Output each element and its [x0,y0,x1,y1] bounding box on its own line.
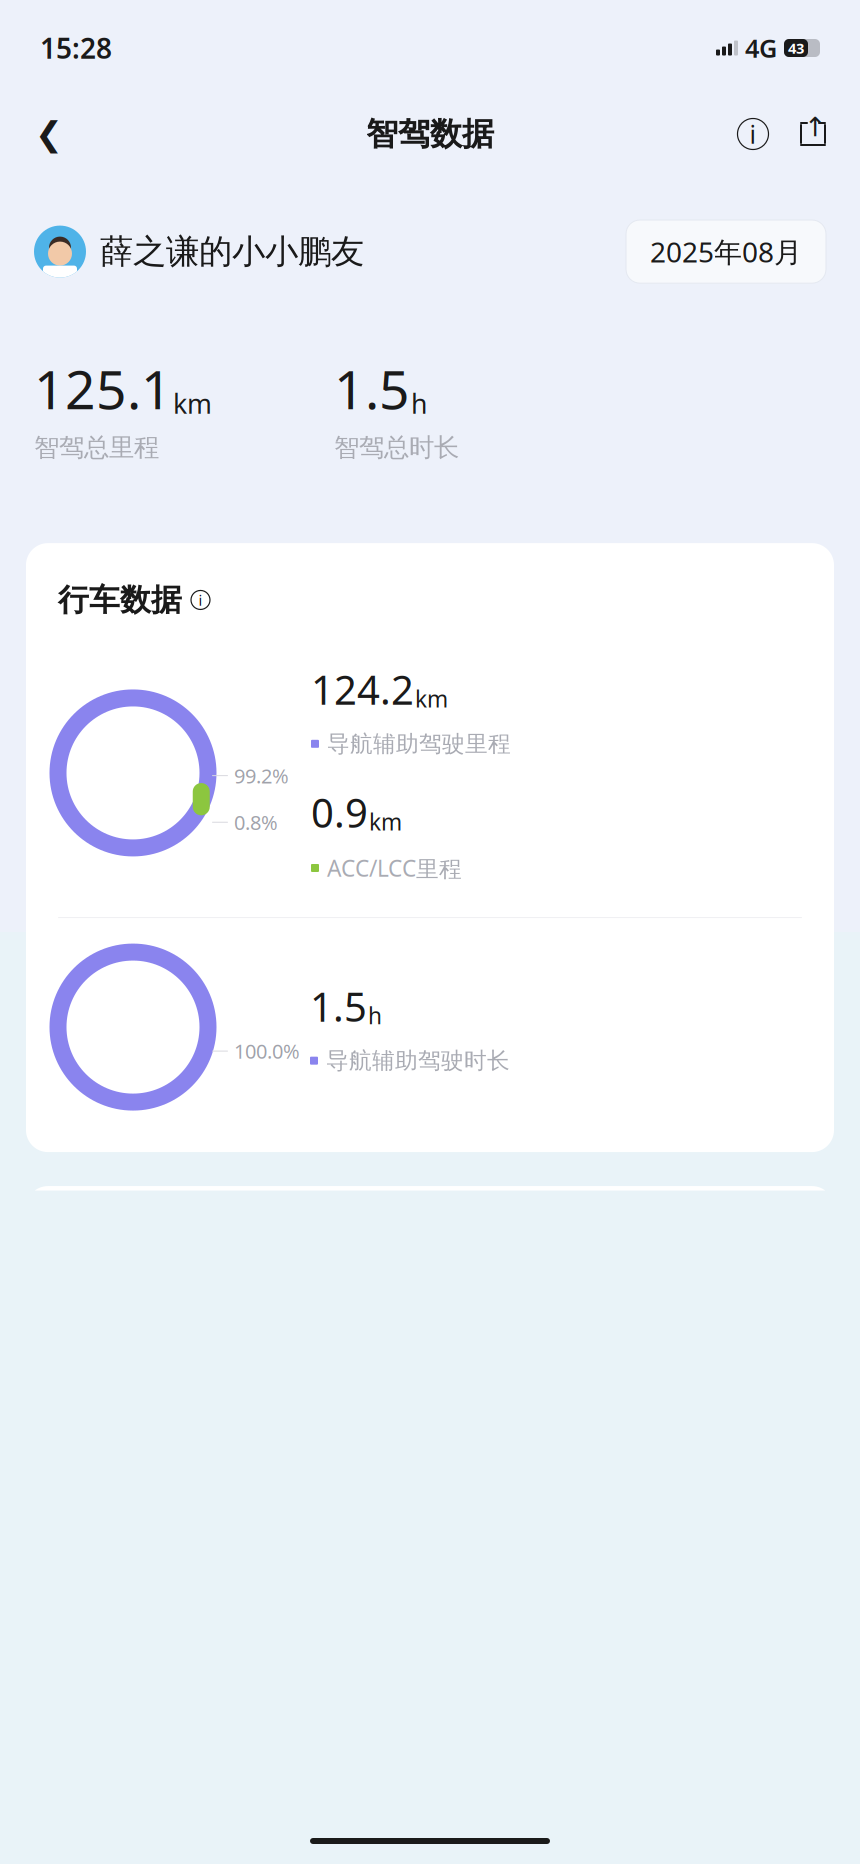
staticText: 导航辅助驾驶时长 [326,1047,510,1074]
staticText: 43 [788,38,804,58]
staticText: 智驾数据 [366,114,494,154]
staticText: 导航辅助驾驶里程 [327,730,511,758]
staticText: i [749,117,756,151]
button[interactable]: 返回 [26,111,72,157]
staticText: 15:28 [40,29,112,67]
staticText: 125.1 [34,353,172,424]
staticText: 行车数据 [58,581,182,619]
staticText: i [198,590,202,610]
staticText: ↑ [804,112,826,142]
staticText: 2025年08月 [650,233,802,270]
staticText: ACC/LCC里程 [327,853,462,883]
staticText: 99.2% [234,762,289,789]
staticText: h [368,1000,382,1031]
staticText: 0.8% [234,809,278,835]
staticText: 1.5 [310,980,367,1033]
staticText: h [411,386,427,421]
staticText: ❮ [35,115,63,153]
staticText: 124.2 [311,663,414,716]
staticText: km [369,807,402,837]
staticText: 0.9 [311,786,368,839]
button[interactable]: 关于行车数据 [191,590,210,609]
staticText: 薛之谦的小小鹏友 [100,231,364,272]
staticText: km [415,684,448,714]
button[interactable]: 说明 [732,113,774,155]
staticText: 智驾总时长 [334,432,459,463]
button[interactable]: 2025年08月 [626,220,826,283]
staticText: 智驾总里程 [34,432,159,463]
staticText: 100.0% [234,1038,300,1064]
button[interactable]: 分享 [792,113,834,155]
staticText: 1.5 [334,353,410,424]
staticText: km [173,386,212,421]
staticText: 4G [745,31,777,65]
